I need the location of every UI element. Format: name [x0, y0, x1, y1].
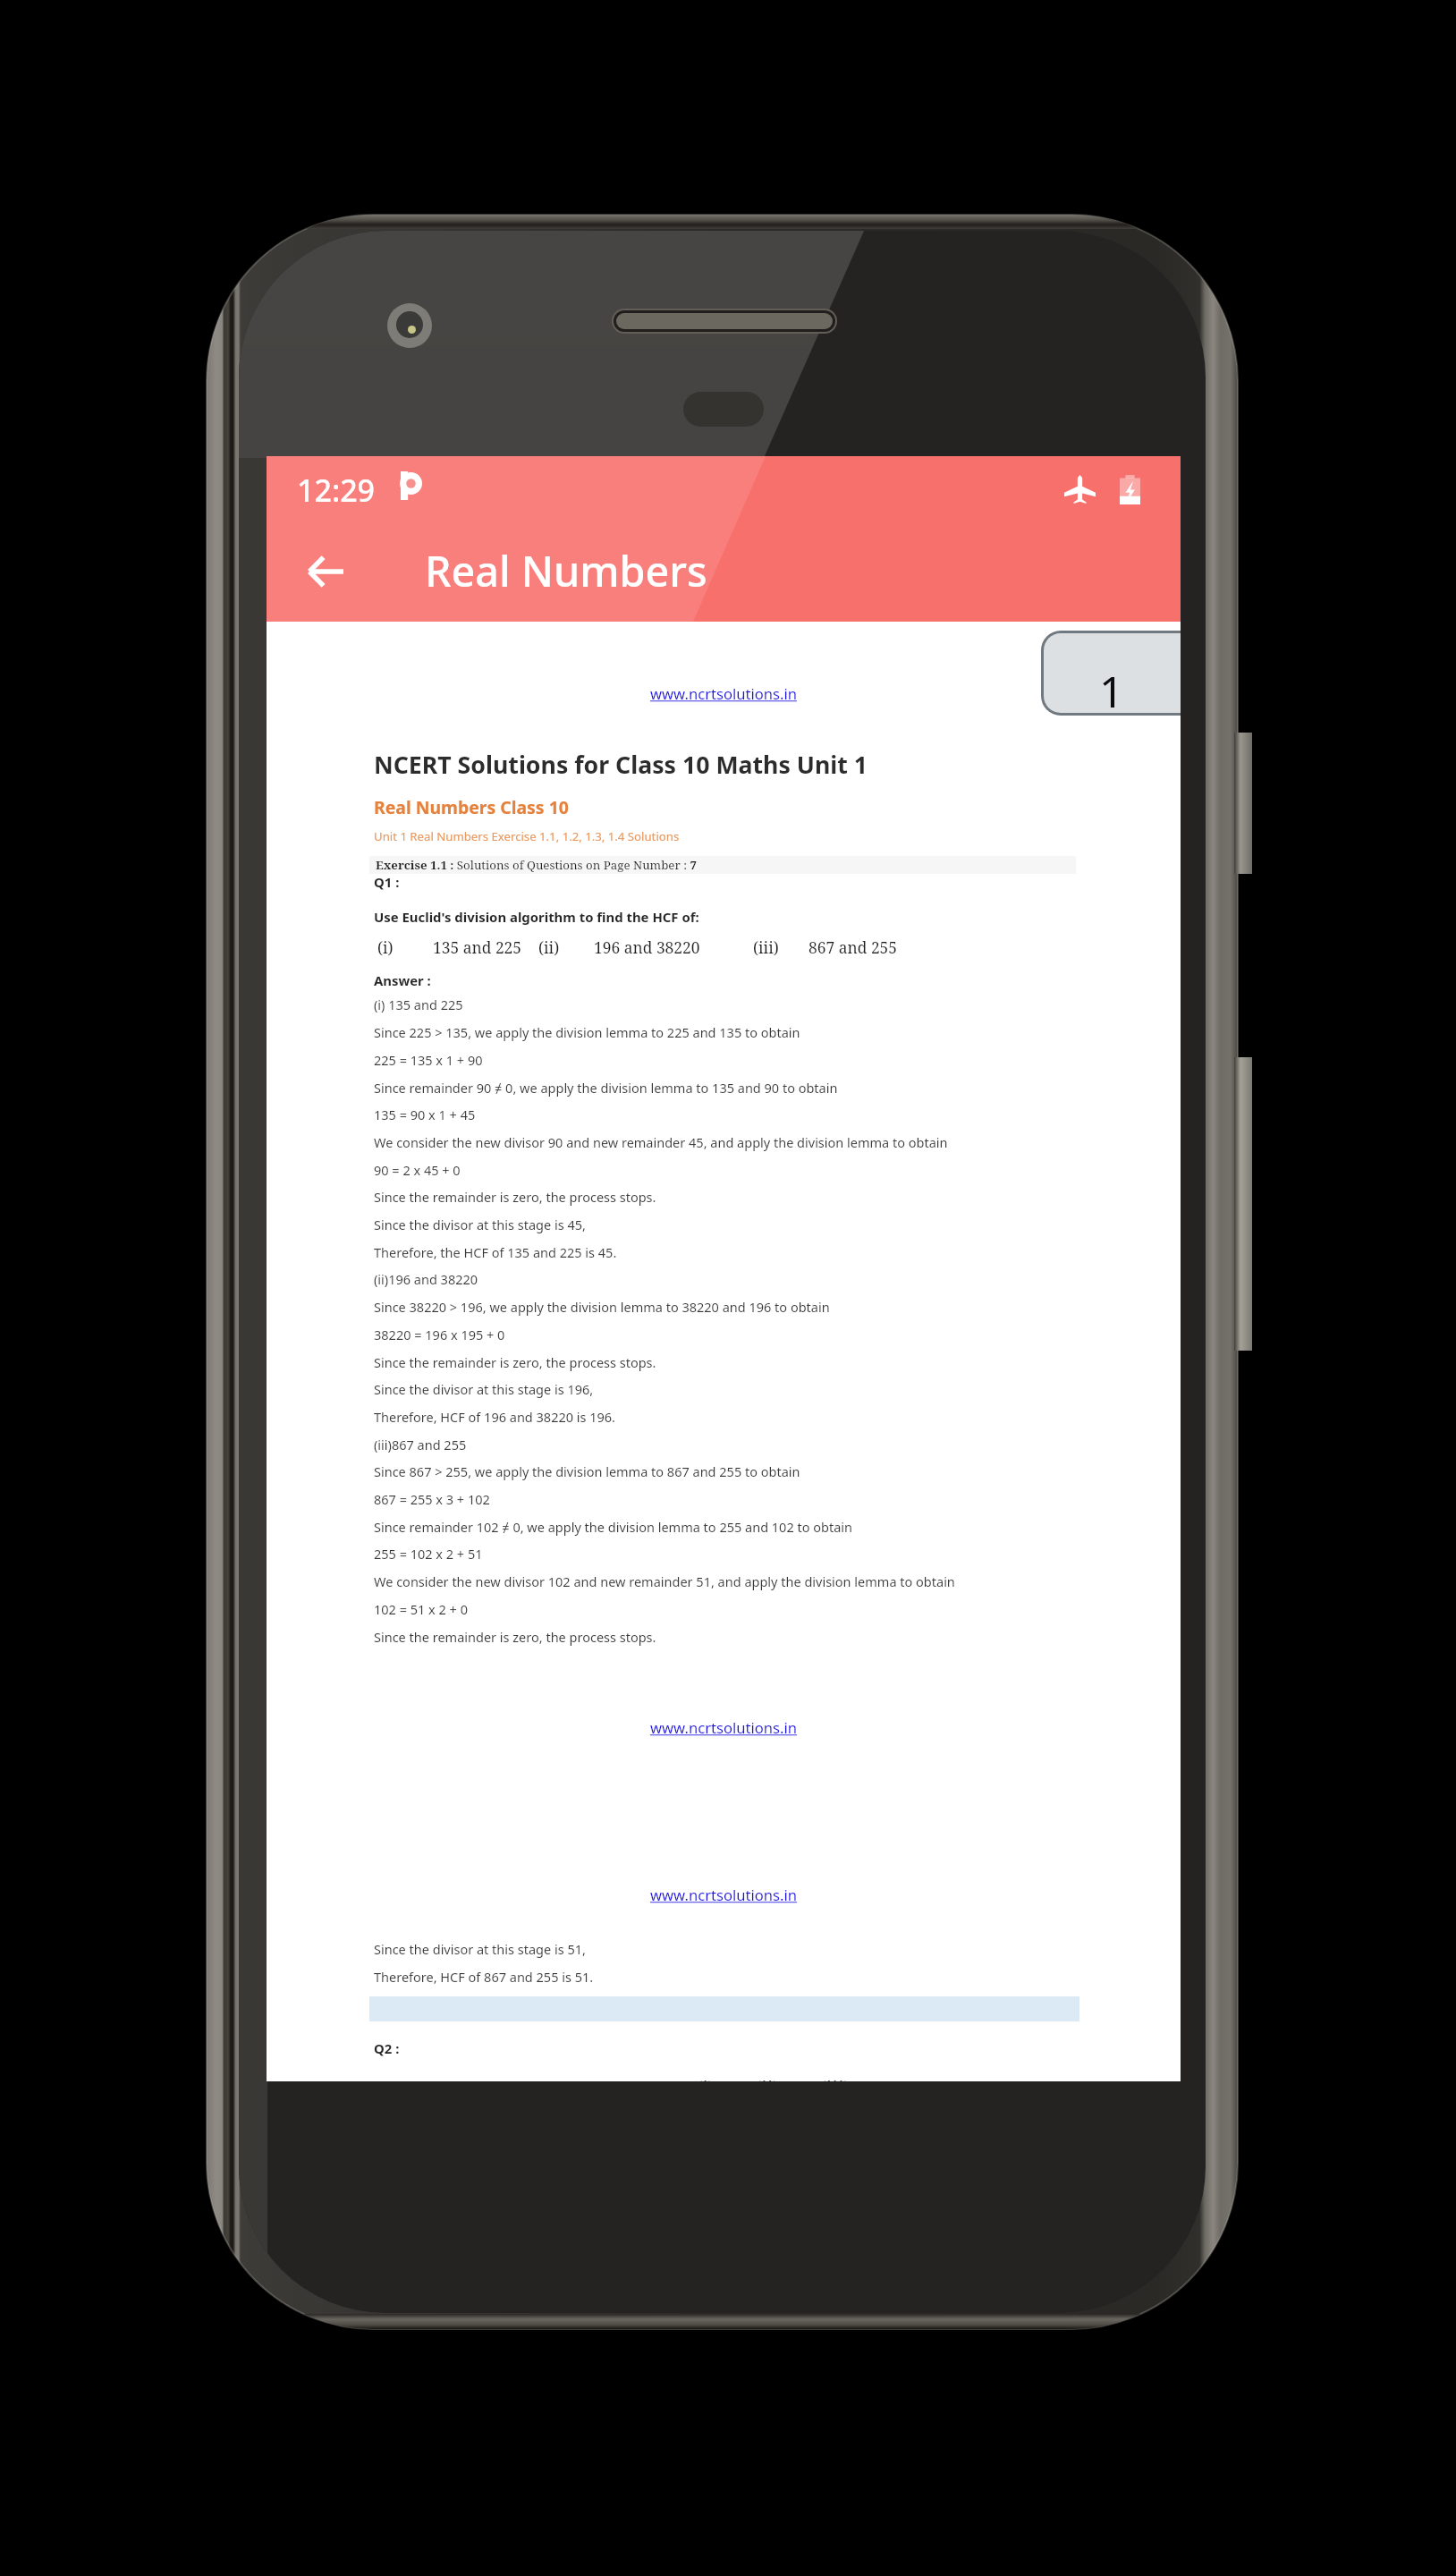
staticText: Q2 :: [374, 2039, 400, 2057]
staticText: 38220 = 196 x 195 + 0: [374, 1326, 505, 1343]
staticText: We consider the new divisor 102 and new …: [374, 1572, 955, 1590]
staticText: www.ncrtsolutions.in: [650, 683, 797, 704]
staticText: Since the remainder is zero, the process…: [374, 1628, 656, 1646]
staticText: Unit 1 Real Numbers Exercise 1.1, 1.2, 1…: [374, 828, 680, 844]
staticText: Real Numbers: [425, 542, 707, 599]
staticText: (i): [377, 936, 394, 958]
staticText: (i) 135 and 225: [374, 996, 463, 1013]
staticText: Since 38220 > 196, we apply the division…: [374, 1298, 830, 1316]
staticText: Since remainder 90 ≠ 0, we apply the div…: [374, 1079, 838, 1097]
staticText: Q1 :: [374, 873, 400, 891]
staticText: Use Euclid's division algorithm to find …: [374, 908, 699, 926]
staticText: Since the remainder is zero, the process…: [374, 1353, 656, 1371]
staticText: 867 and 255: [808, 936, 898, 958]
staticText: Therefore, HCF of 196 and 38220 is 196.: [374, 1408, 616, 1426]
staticText: 196 and 38220: [594, 936, 700, 958]
staticText: Since the divisor at this stage is 45,: [374, 1216, 586, 1233]
staticText: 135 and 225: [433, 936, 522, 958]
staticText: Since 867 > 255, we apply the division l…: [374, 1462, 800, 1480]
staticText: 102 = 51 x 2 + 0: [374, 1600, 468, 1618]
staticText: Answer :: [374, 971, 431, 989]
staticText: Since remainder 102 ≠ 0, we apply the di…: [374, 1518, 853, 1536]
staticText: (iii)867 and 255: [374, 1436, 467, 1453]
staticText: Real Numbers Class 10: [374, 795, 569, 818]
staticText: Exercise 1.1 : Solutions of Questions on…: [376, 857, 697, 873]
staticText: www.ncrtsolutions.in: [650, 1717, 797, 1738]
staticText: Since 225 > 135, we apply the division l…: [374, 1023, 800, 1041]
staticText: Since the remainder is zero, the process…: [374, 1188, 656, 1206]
staticText: 1: [1099, 662, 1124, 716]
staticText: (ii)196 and 38220: [374, 1270, 478, 1288]
staticText: 135 = 90 x 1 + 45: [374, 1106, 476, 1123]
staticText: 90 = 2 x 45 + 0: [374, 1161, 461, 1179]
staticText: 225 = 135 x 1 + 90: [374, 1051, 483, 1069]
button[interactable]: 1: [1041, 631, 1181, 716]
staticText: www.ncrtsolutions.in: [650, 1885, 797, 1905]
staticText: (iii): [753, 936, 779, 958]
staticText: 255 = 102 x 2 + 51: [374, 1545, 483, 1563]
staticText: Since the divisor at this stage is 51,: [374, 1940, 586, 1958]
staticText: (ii): [538, 936, 560, 958]
staticText: 867 = 255 x 3 + 102: [374, 1490, 490, 1508]
button[interactable]: Navigate back: [290, 536, 361, 607]
staticText: NCERT Solutions for Class 10 Maths Unit …: [374, 748, 868, 780]
staticText: We consider the new divisor 90 and new r…: [374, 1133, 948, 1151]
staticText: Therefore, HCF of 867 and 255 is 51.: [374, 1968, 594, 1986]
staticText: Therefore, the HCF of 135 and 225 is 45.: [374, 1243, 617, 1261]
staticText: Since the divisor at this stage is 196,: [374, 1380, 594, 1398]
staticText: 12:29: [297, 470, 376, 511]
